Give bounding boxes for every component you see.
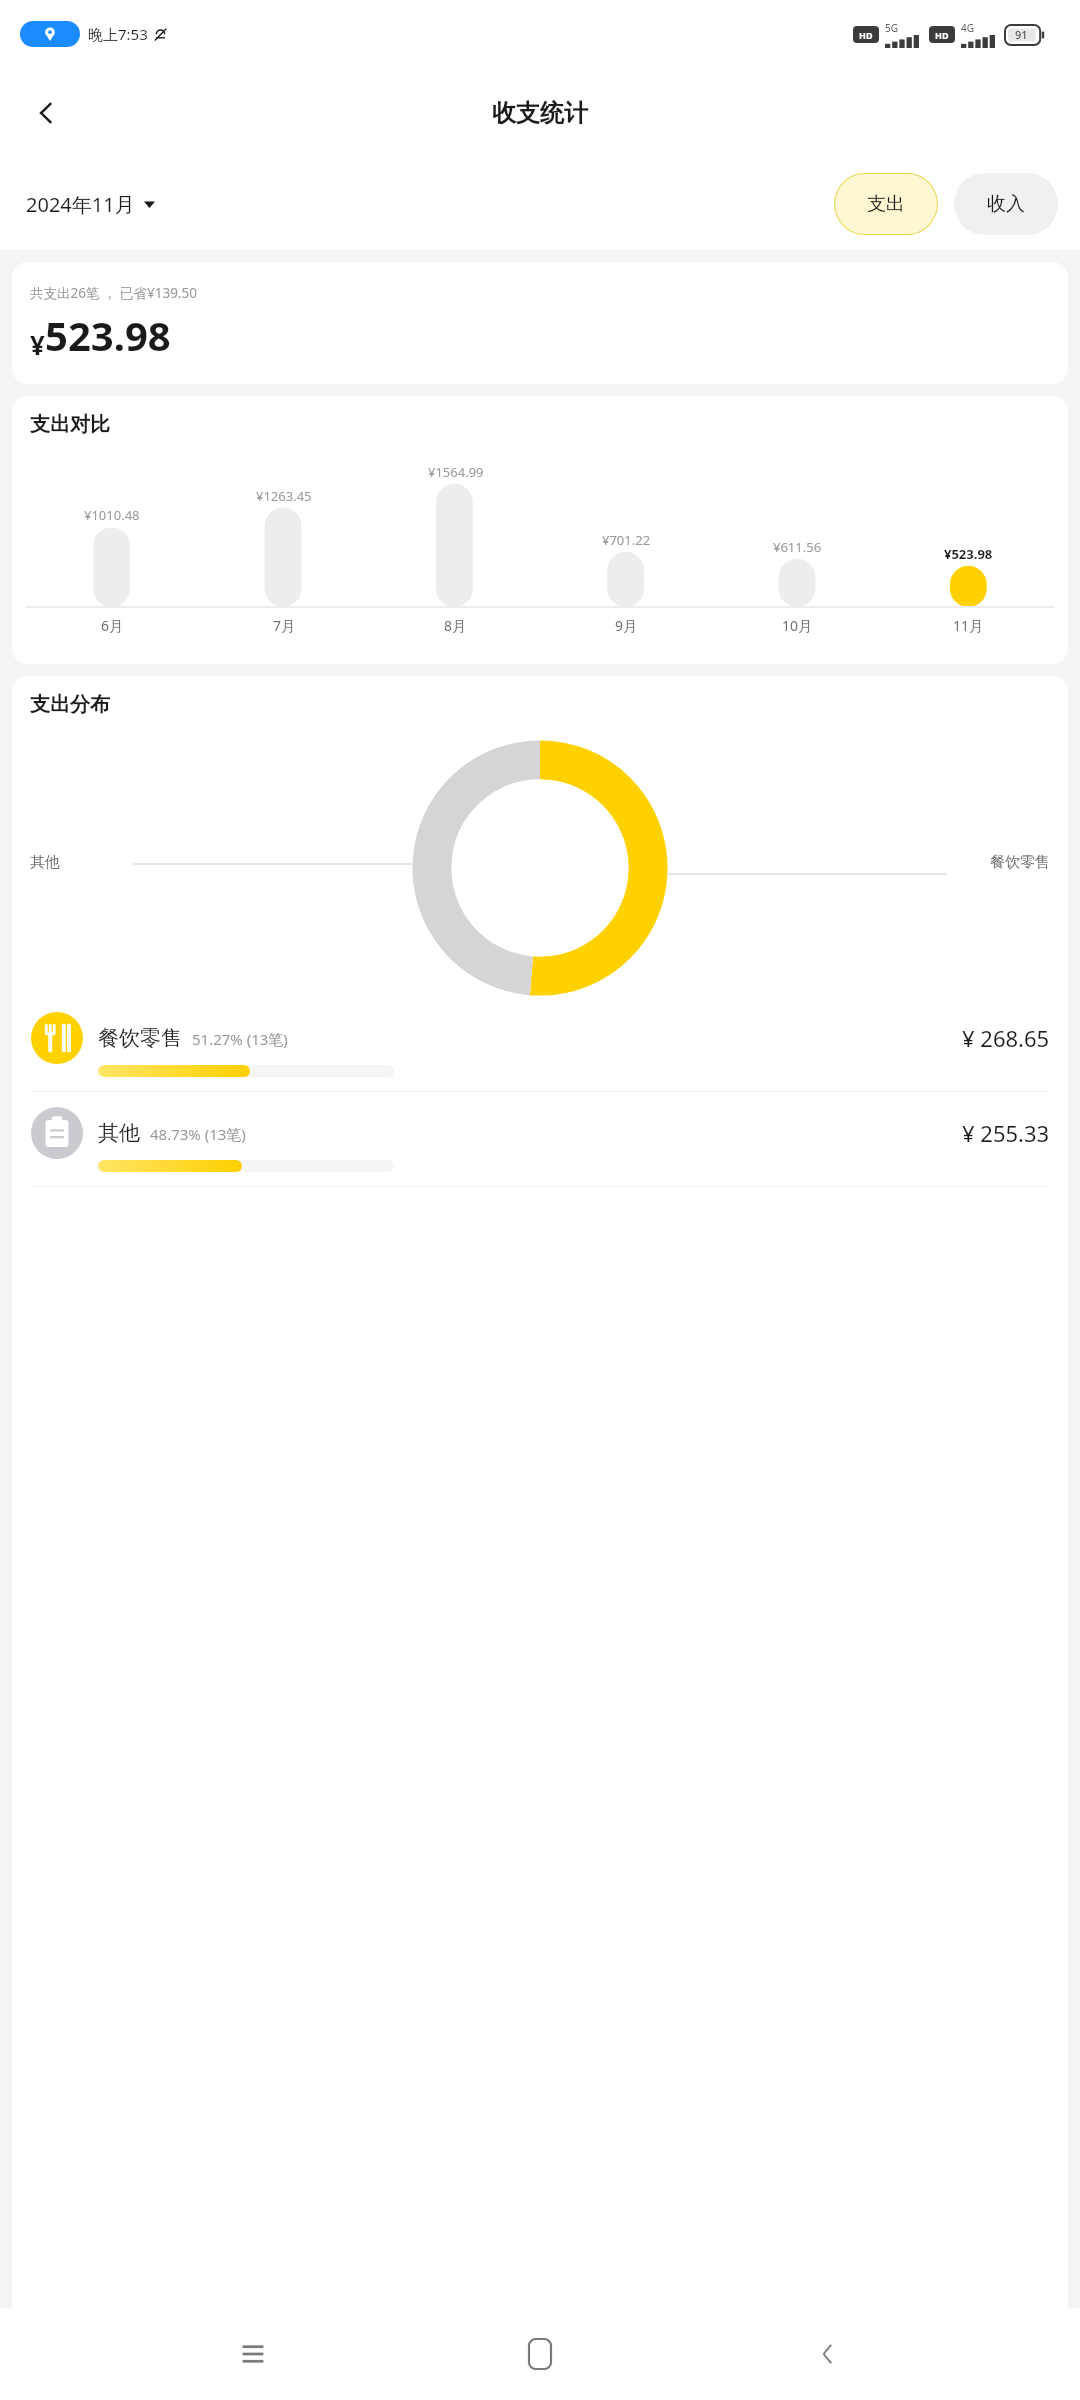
staticText: 支出对比: [30, 412, 110, 437]
staticText: 7月: [273, 616, 296, 635]
staticText: 91: [1015, 27, 1028, 42]
staticText: ¥: [30, 327, 45, 362]
staticText: 餐饮零售: [990, 853, 1050, 872]
button[interactable]: Back: [18, 85, 74, 141]
staticText: 共支出26笔 ， 已省¥139.50: [30, 284, 197, 302]
button[interactable]: Home: [505, 2319, 575, 2389]
staticText: HD: [935, 29, 949, 41]
button[interactable]: 共支出26笔 ， 已省¥139.50: [12, 262, 1068, 384]
staticText: ¥523.98: [944, 545, 993, 563]
button[interactable]: 2024年11月: [22, 187, 159, 222]
staticText: 收支统计: [492, 98, 588, 128]
staticText: 5G: [885, 21, 898, 35]
staticText: 其他: [98, 1120, 140, 1146]
staticText: ¥701.22: [602, 531, 651, 549]
staticText: 8月: [444, 616, 467, 635]
staticText: 收入: [987, 192, 1025, 216]
staticText: 523.98: [45, 308, 171, 362]
staticText: 51.27% (13笔): [192, 1029, 288, 1049]
button[interactable]: Back: [793, 2319, 863, 2389]
button[interactable]: 餐饮零售: [12, 1011, 1068, 1106]
staticText: 48.73% (13笔): [150, 1124, 246, 1144]
staticText: HD: [859, 29, 873, 41]
button[interactable]: 支出: [834, 173, 938, 235]
staticText: 支出: [867, 192, 905, 216]
button[interactable]: 收入: [954, 173, 1058, 235]
staticText: ¥611.56: [773, 538, 822, 556]
staticText: 支出分布: [30, 692, 110, 717]
button[interactable]: 其他: [12, 1106, 1068, 1201]
staticText: ¥ 268.65: [962, 1023, 1050, 1053]
staticText: ¥1564.99: [428, 463, 484, 481]
staticText: ¥ 255.33: [962, 1118, 1050, 1148]
staticText: 6月: [101, 616, 124, 635]
staticText: 2024年11月: [26, 191, 135, 218]
staticText: 9月: [615, 616, 638, 635]
staticText: ¥1010.48: [84, 506, 140, 524]
staticText: 10月: [782, 616, 813, 635]
staticText: 其他: [30, 853, 60, 872]
staticText: 餐饮零售: [98, 1025, 182, 1051]
staticText: 晚上7:53: [88, 24, 148, 44]
staticText: ¥1263.45: [256, 487, 312, 505]
staticText: 11月: [953, 616, 984, 635]
staticText: 4G: [961, 21, 974, 35]
button[interactable]: Recents: [218, 2319, 288, 2389]
